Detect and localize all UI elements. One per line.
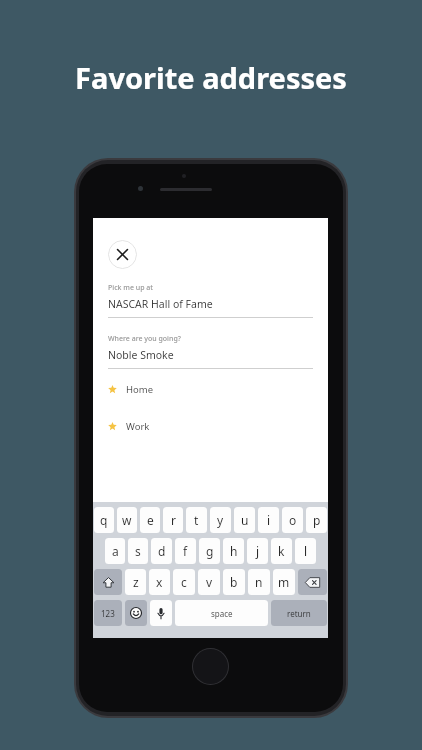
staticText: return [287,608,311,619]
button[interactable]: s [128,538,148,564]
button[interactable]: q [94,507,114,533]
button[interactable]: l [295,538,316,564]
staticText: j [256,543,260,559]
button[interactable]: Pick me up at [93,283,328,318]
staticText: a [112,543,119,559]
staticText: x [156,574,163,590]
button[interactable]: z [125,569,146,595]
staticText: c [181,574,187,590]
staticText: o [289,512,297,528]
button[interactable]: o [282,507,303,533]
button[interactable]: v [198,569,220,595]
button[interactable]: Work [93,417,328,436]
staticText: t [194,512,199,528]
staticText: e [147,512,154,528]
staticText: v [206,574,213,590]
button[interactable]: Emoji [125,600,147,626]
staticText: p [313,512,321,528]
button[interactable]: b [223,569,245,595]
button[interactable]: j [247,538,268,564]
button[interactable]: a [105,538,125,564]
staticText: k [278,543,285,559]
staticText: b [230,574,238,590]
staticText: Work [126,420,150,433]
button[interactable]: h [223,538,244,564]
button[interactable]: f [175,538,196,564]
staticText: h [230,543,238,559]
button[interactable]: k [271,538,292,564]
button[interactable]: u [234,507,255,533]
button[interactable]: d [151,538,172,564]
staticText: Pick me up at [108,283,154,293]
staticText: f [183,543,188,559]
staticText: g [206,543,214,559]
staticText: Home [126,383,154,396]
staticText: u [241,512,249,528]
button[interactable]: space [175,600,268,626]
staticText: r [171,512,176,528]
button[interactable]: 123 [94,600,122,626]
button[interactable]: Where are you going? [93,334,328,369]
button[interactable]: Backspace [298,569,327,595]
staticText: 123 [101,608,115,619]
button[interactable]: y [210,507,231,533]
staticText: Noble Smoke [108,348,174,362]
button[interactable]: w [117,507,137,533]
staticText: Where are you going? [108,334,181,344]
staticText: s [135,543,141,559]
button[interactable]: Shift [94,569,122,595]
button[interactable]: m [273,569,295,595]
button[interactable]: p [306,507,327,533]
staticText: z [133,574,139,590]
button[interactable]: Dictate [150,600,172,626]
button[interactable]: Home [93,380,328,399]
staticText: l [304,543,308,559]
button[interactable]: x [149,569,170,595]
staticText: y [217,512,224,528]
button[interactable]: t [186,507,207,533]
staticText: Favorite addresses [75,58,347,97]
staticText: NASCAR Hall of Fame [108,297,213,311]
button[interactable]: g [199,538,220,564]
staticText: w [122,512,132,528]
button[interactable]: i [258,507,279,533]
button[interactable]: c [173,569,195,595]
staticText: space [211,608,233,619]
staticText: m [278,574,290,590]
button[interactable]: r [163,507,183,533]
staticText: q [100,512,108,528]
staticText: i [267,512,271,528]
button[interactable]: return [271,600,327,626]
other: Home [192,648,229,685]
staticText: d [158,543,166,559]
staticText: n [255,574,263,590]
button[interactable]: e [140,507,160,533]
button[interactable]: Close [108,240,137,269]
button[interactable]: n [248,569,270,595]
